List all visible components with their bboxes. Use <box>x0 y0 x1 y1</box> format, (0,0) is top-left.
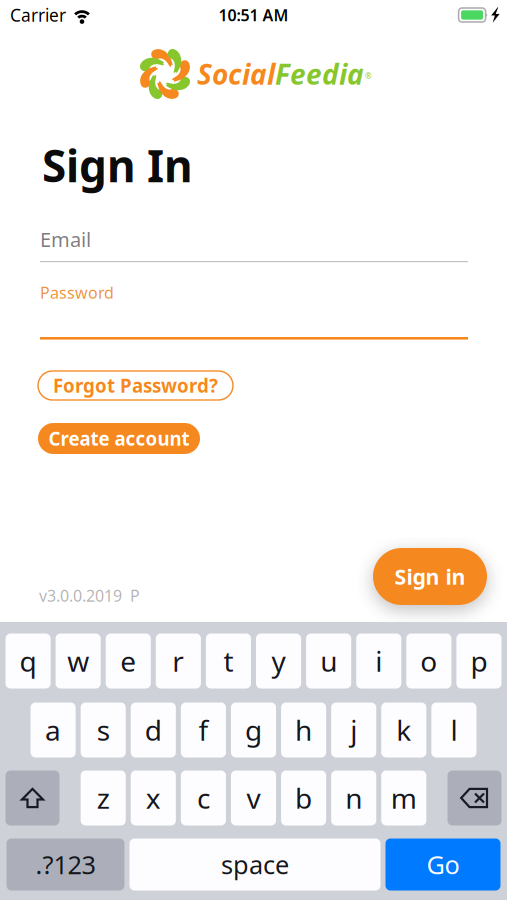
staticText: m <box>391 779 417 817</box>
staticText: g <box>245 711 262 749</box>
staticText: Carrier <box>10 3 66 26</box>
button[interactable]: Forgot Password? <box>38 371 233 400</box>
button[interactable]: d <box>131 702 176 757</box>
staticText: q <box>19 642 36 680</box>
staticText: f <box>198 711 208 749</box>
staticText: Feedia <box>275 55 364 93</box>
staticText: .?123 <box>35 848 95 881</box>
button[interactable]: e <box>106 633 151 688</box>
button[interactable]: l <box>431 702 476 757</box>
staticText: r <box>172 642 184 680</box>
staticText: Email <box>40 226 91 253</box>
button[interactable]: Shift <box>5 770 59 825</box>
button[interactable]: h <box>281 702 326 757</box>
staticText: Sign In <box>42 136 193 194</box>
staticText: z <box>97 779 110 817</box>
staticText: h <box>295 711 312 749</box>
staticText: n <box>345 779 362 817</box>
button[interactable]: x <box>131 770 176 825</box>
staticText: space <box>221 848 289 881</box>
staticText: l <box>450 711 457 749</box>
button[interactable]: Delete <box>447 770 501 825</box>
button[interactable]: Create account <box>38 423 200 454</box>
button[interactable]: p <box>456 633 501 688</box>
staticText: Forgot Password? <box>53 373 218 398</box>
button[interactable]: m <box>381 770 426 825</box>
button[interactable]: f <box>181 702 226 757</box>
staticText: Password <box>40 282 114 303</box>
staticText: v3.0.0.2019 P <box>39 585 140 606</box>
button[interactable]: .?123 <box>6 838 124 890</box>
staticText: i <box>375 642 382 680</box>
button[interactable]: w <box>56 633 101 688</box>
staticText: o <box>420 642 437 680</box>
staticText: b <box>295 779 312 817</box>
button[interactable]: u <box>306 633 351 688</box>
button[interactable]: q <box>5 633 51 688</box>
staticText: Go <box>426 848 459 881</box>
button[interactable]: Sign in <box>373 548 487 605</box>
staticText: 10:51 AM <box>218 4 288 26</box>
button[interactable]: b <box>281 770 326 825</box>
button[interactable]: s <box>81 702 126 757</box>
staticText: s <box>97 711 110 749</box>
button[interactable]: c <box>181 770 226 825</box>
button[interactable]: i <box>356 633 401 688</box>
button[interactable]: g <box>231 702 276 757</box>
staticText: j <box>350 711 357 749</box>
button[interactable]: z <box>81 770 126 825</box>
staticText: w <box>67 642 89 680</box>
staticText: d <box>145 711 162 749</box>
button[interactable]: space <box>129 838 380 890</box>
button[interactable]: v <box>231 770 276 825</box>
button[interactable]: a <box>30 702 76 757</box>
staticText: k <box>396 711 411 749</box>
staticText: t <box>223 642 233 680</box>
staticText: Create account <box>48 426 189 451</box>
staticText: x <box>146 779 161 817</box>
button[interactable]: k <box>381 702 426 757</box>
staticText: v <box>246 779 260 817</box>
button[interactable]: j <box>331 702 376 757</box>
staticText: e <box>120 642 136 680</box>
button[interactable]: r <box>156 633 201 688</box>
staticText: ® <box>365 71 372 81</box>
staticText: Social <box>197 55 275 93</box>
button[interactable]: n <box>331 770 376 825</box>
staticText: u <box>320 642 337 680</box>
staticText: c <box>197 779 210 817</box>
staticText: a <box>45 711 61 749</box>
staticText: Sign in <box>394 562 465 591</box>
staticText: y <box>271 642 285 680</box>
button[interactable]: y <box>256 633 301 688</box>
staticText: p <box>470 642 487 680</box>
button[interactable]: t <box>206 633 251 688</box>
button[interactable]: o <box>406 633 451 688</box>
button[interactable]: Go <box>385 838 500 890</box>
